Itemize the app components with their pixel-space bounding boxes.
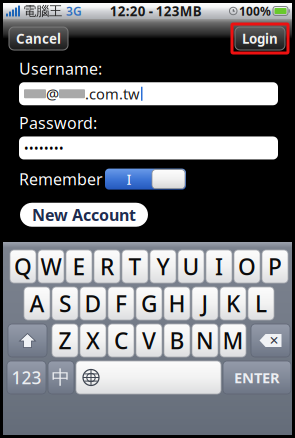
staticText: Password: xyxy=(19,112,97,133)
staticText: D xyxy=(84,288,101,318)
button[interactable]: X xyxy=(80,324,106,357)
staticText: 123 xyxy=(11,366,41,389)
staticText: A xyxy=(29,288,44,318)
button[interactable]: C xyxy=(108,324,134,357)
button[interactable]: ✕ xyxy=(251,324,290,357)
button[interactable]: Cancel xyxy=(9,27,68,50)
staticText: 3G xyxy=(66,3,82,19)
staticText: New Account xyxy=(32,204,136,225)
button[interactable]: E xyxy=(66,250,92,283)
button[interactable]: Y xyxy=(150,250,176,283)
staticText: R xyxy=(100,251,114,281)
staticText: Cancel xyxy=(16,30,61,47)
button[interactable]: K xyxy=(220,287,246,320)
staticText: Remember xyxy=(19,168,103,190)
staticText: Login xyxy=(242,30,278,47)
button[interactable]: I xyxy=(105,169,186,190)
staticText: Q xyxy=(14,251,32,281)
staticText: M xyxy=(222,325,243,355)
button[interactable]: G xyxy=(136,287,162,320)
staticText: O xyxy=(238,251,256,281)
staticText: 100% xyxy=(239,3,271,19)
button[interactable]: V xyxy=(136,324,162,357)
staticText: V xyxy=(142,325,156,355)
button[interactable]: A xyxy=(24,287,50,320)
staticText: N xyxy=(196,325,214,355)
staticText: 中 xyxy=(51,366,70,389)
staticText: L xyxy=(255,288,267,318)
staticText: Username: xyxy=(19,58,102,79)
staticText: B xyxy=(169,325,184,355)
button[interactable]: ENTER xyxy=(223,361,291,394)
staticText: F xyxy=(115,288,127,318)
staticText: Z xyxy=(58,325,71,355)
staticText: @ xyxy=(46,84,59,103)
staticText: T xyxy=(128,251,141,281)
button[interactable]: J xyxy=(192,287,218,320)
staticText: ✕ xyxy=(269,334,279,347)
button[interactable]: 123 xyxy=(7,361,46,394)
staticText: U xyxy=(182,251,199,281)
button[interactable]: F xyxy=(108,287,134,320)
button[interactable]: H xyxy=(164,287,190,320)
button[interactable]: P xyxy=(262,250,288,283)
staticText: .com.tw xyxy=(85,84,140,103)
staticText: •••••••• xyxy=(24,140,64,156)
button[interactable]: D xyxy=(80,287,106,320)
button[interactable]: Q xyxy=(10,250,36,283)
button[interactable]: New Account xyxy=(20,203,148,227)
button[interactable]: W xyxy=(38,250,64,283)
button[interactable]: Z xyxy=(52,324,78,357)
staticText: ENTER xyxy=(234,368,280,387)
staticText: K xyxy=(226,288,240,318)
button[interactable]: Login xyxy=(235,27,285,50)
staticText: X xyxy=(86,325,100,355)
button[interactable]: L xyxy=(248,287,274,320)
staticText: C xyxy=(114,325,128,355)
button[interactable] xyxy=(8,324,47,357)
staticText: E xyxy=(72,251,85,281)
button[interactable]: B xyxy=(164,324,190,357)
staticText: H xyxy=(168,288,185,318)
button[interactable]: S xyxy=(52,287,78,320)
button[interactable] xyxy=(76,361,221,394)
staticText: J xyxy=(201,288,208,318)
button[interactable]: R xyxy=(94,250,120,283)
button[interactable]: M xyxy=(220,324,246,357)
staticText: P xyxy=(268,251,282,281)
button[interactable]: N xyxy=(192,324,218,357)
button[interactable]: U xyxy=(178,250,204,283)
staticText: 電腦王 xyxy=(23,3,62,19)
staticText: I xyxy=(215,251,223,281)
button[interactable]: O xyxy=(234,250,260,283)
button[interactable]: 中 xyxy=(48,361,74,394)
staticText: 12:20 - 123MB xyxy=(110,2,202,20)
staticText: S xyxy=(59,288,71,318)
button[interactable]: I xyxy=(206,250,232,283)
staticText: W xyxy=(40,251,61,281)
staticText: Y xyxy=(156,251,169,281)
button[interactable]: T xyxy=(122,250,148,283)
staticText: G xyxy=(141,288,157,318)
staticText: I xyxy=(126,169,131,189)
